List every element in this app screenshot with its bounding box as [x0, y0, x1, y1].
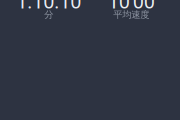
staticText: 分: [44, 9, 53, 20]
staticText: 1:10:10: [16, 0, 81, 13]
staticText: 平均速度: [113, 9, 149, 20]
staticText: 10'00: [108, 0, 155, 13]
